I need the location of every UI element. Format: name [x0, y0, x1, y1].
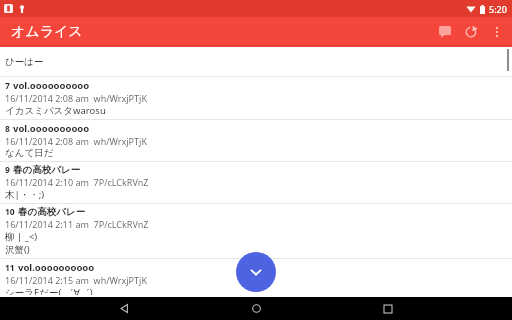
staticText: 11 [5, 262, 15, 274]
staticText: 木|・・;) [5, 188, 45, 201]
staticText: 沢蟹() [5, 243, 30, 256]
staticText: イカスミパスタwarosu [5, 104, 106, 117]
staticText: 16/11/2014 2:10 am 7P/cLCkRVnZ [5, 176, 149, 188]
button[interactable]: 9 [0, 162, 512, 203]
staticText: 9 [5, 164, 10, 176]
button[interactable]: 10 [0, 204, 512, 258]
staticText: ひーはー [5, 56, 44, 68]
button[interactable]: Recent apps [376, 297, 400, 320]
staticText: 8 [5, 123, 10, 135]
staticText: vol.oooooooooo [13, 122, 90, 135]
button[interactable]: Back [112, 297, 136, 320]
button[interactable]: Comments [432, 19, 458, 45]
staticText: 春の高校バレー [13, 164, 81, 176]
button[interactable]: Home [244, 297, 268, 320]
staticText: 春の高校バレー [18, 206, 86, 218]
staticText: なんて日だ [5, 147, 54, 159]
staticText: vol.oooooooooo [18, 261, 95, 274]
button[interactable]: More options [484, 19, 510, 45]
button[interactable]: 7 [0, 77, 512, 119]
staticText: シーラEだー( ゛∀゛) [5, 286, 93, 295]
staticText: 16/11/2014 2:11 am 7P/cLCkRVnZ [5, 218, 149, 230]
staticText: 10 [5, 206, 15, 218]
button[interactable]: 8 [0, 120, 512, 161]
staticText: 16/11/2014 2:08 am wh/WrxjPTjK [5, 92, 147, 104]
staticText: 7 [5, 80, 10, 92]
staticText: 16/11/2014 2:15 am wh/WrxjPTjK [5, 274, 147, 286]
button[interactable]: Scroll to bottom [236, 252, 276, 292]
staticText: オムライス [11, 23, 83, 41]
staticText: vol.oooooooooo [13, 79, 90, 92]
button[interactable]: ひーはー [0, 47, 512, 76]
staticText: 柳 | _<) [5, 230, 38, 243]
button[interactable]: 11 [0, 259, 512, 297]
staticText: 5:20 [489, 3, 507, 15]
staticText: 16/11/2014 2:08 am wh/WrxjPTjK [5, 135, 147, 147]
button[interactable]: Refresh [458, 19, 484, 45]
